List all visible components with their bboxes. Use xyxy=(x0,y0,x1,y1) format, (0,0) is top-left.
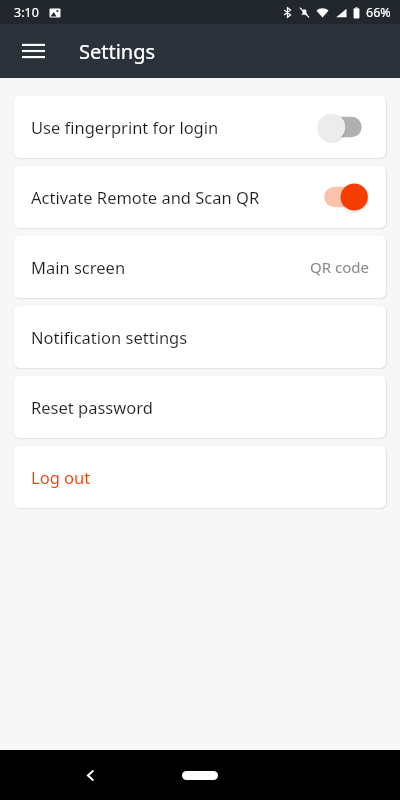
button[interactable]: Toggle on xyxy=(317,180,369,214)
staticText: Settings xyxy=(79,38,156,65)
button[interactable]: Use fingerprint for login xyxy=(14,96,386,158)
staticText: Activate Remote and Scan QR xyxy=(31,186,317,208)
staticText: Use fingerprint for login xyxy=(31,116,317,138)
button[interactable]: Back xyxy=(68,753,112,797)
button[interactable]: Home xyxy=(168,760,232,790)
button[interactable]: Reset password xyxy=(14,376,386,438)
button[interactable]: Notification settings xyxy=(14,306,386,368)
staticText: Notification settings xyxy=(31,326,369,348)
button[interactable]: Log out xyxy=(14,446,386,508)
staticText: QR code xyxy=(310,257,369,277)
button[interactable]: Toggle off xyxy=(317,110,369,144)
staticText: Main screen xyxy=(31,256,310,278)
button[interactable]: Main screen xyxy=(14,236,386,298)
staticText: 3:10 xyxy=(14,4,39,21)
staticText: 66% xyxy=(366,4,391,21)
button[interactable]: Activate Remote and Scan QR xyxy=(14,166,386,228)
staticText: Log out xyxy=(31,466,369,488)
button[interactable]: Open navigation menu xyxy=(10,28,56,74)
staticText: Reset password xyxy=(31,396,369,418)
